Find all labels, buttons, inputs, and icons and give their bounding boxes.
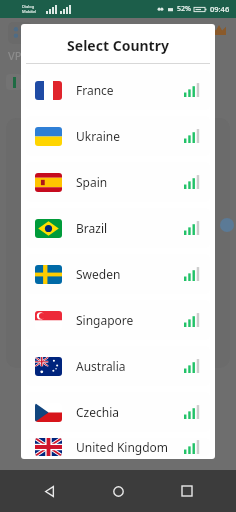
button[interactable]: Back bbox=[29, 471, 69, 511]
button[interactable]: Singapore bbox=[26, 300, 210, 340]
button[interactable]: Czechia bbox=[26, 392, 210, 432]
button[interactable]: Brazil bbox=[26, 208, 210, 248]
button[interactable]: France bbox=[26, 70, 210, 110]
button[interactable]: Australia bbox=[26, 346, 210, 386]
staticText: Czechia bbox=[76, 404, 119, 420]
staticText: Australia bbox=[76, 358, 126, 374]
staticText: 52% bbox=[177, 4, 191, 14]
button[interactable]: Home bbox=[98, 471, 138, 511]
staticText: Dialog Mobitel bbox=[22, 4, 37, 14]
staticText: Brazil bbox=[76, 220, 108, 236]
staticText: Sweden bbox=[76, 266, 121, 282]
staticText: 09:46 bbox=[210, 4, 230, 14]
staticText: France bbox=[76, 82, 114, 98]
staticText: VPN bbox=[8, 48, 31, 63]
staticText: Singapore bbox=[76, 312, 134, 328]
button[interactable]: Spain bbox=[26, 162, 210, 202]
button[interactable]: Recents bbox=[167, 471, 207, 511]
button[interactable]: United Kingdom bbox=[26, 438, 210, 456]
staticText: United Kingdom bbox=[76, 439, 169, 455]
button[interactable]: Ukraine bbox=[26, 116, 210, 156]
staticText: Select Country bbox=[21, 36, 215, 55]
staticText: Ukraine bbox=[76, 128, 120, 144]
button[interactable]: Sweden bbox=[26, 254, 210, 294]
staticText: Spain bbox=[76, 174, 108, 190]
